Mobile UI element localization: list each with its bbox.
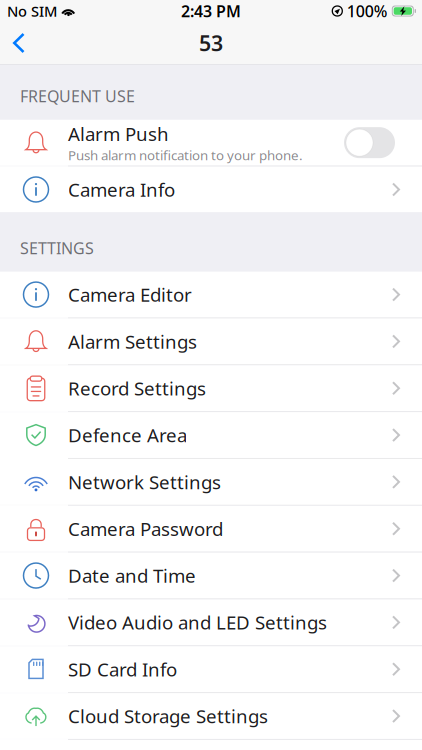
staticText: Defence Area <box>68 423 187 447</box>
staticText: Cloud Storage Settings <box>68 704 268 728</box>
staticText: Camera Editor <box>68 282 192 307</box>
button[interactable]: Camera Editor <box>0 272 422 317</box>
staticText: SD Card Info <box>68 657 177 682</box>
staticText: Push alarm notification to your phone. <box>68 146 303 164</box>
staticText: No SIM <box>7 1 57 21</box>
staticText: 2:43 PM <box>181 0 241 22</box>
button[interactable]: Back <box>0 22 38 64</box>
staticText: 53 <box>199 29 223 57</box>
staticText: Camera Password <box>68 516 223 541</box>
button[interactable]: Date and Time <box>0 553 422 598</box>
button[interactable]: Network Settings <box>0 459 422 505</box>
button[interactable]: Camera Info <box>0 167 422 212</box>
button[interactable]: Defence Area <box>0 412 422 458</box>
staticText: SETTINGS <box>20 237 94 259</box>
staticText: Record Settings <box>68 376 206 401</box>
staticText: FREQUENT USE <box>20 85 135 107</box>
staticText: Video Audio and LED Settings <box>68 610 327 635</box>
staticText: Network Settings <box>68 469 221 494</box>
staticText: Camera Info <box>68 177 175 202</box>
button[interactable]: Cloud Storage Settings <box>0 693 422 739</box>
staticText: Alarm Settings <box>68 329 197 354</box>
staticText: Date and Time <box>68 563 196 588</box>
staticText: 100% <box>347 0 388 22</box>
staticText: Alarm Push <box>68 121 169 146</box>
button[interactable]: Record Settings <box>0 365 422 411</box>
button[interactable]: Video Audio and LED Settings <box>0 599 422 645</box>
button[interactable]: Alarm Push <box>0 120 422 165</box>
button[interactable]: SD Card Info <box>0 646 422 692</box>
button[interactable]: Camera Password <box>0 506 422 552</box>
button[interactable]: Alarm Settings <box>0 318 422 364</box>
